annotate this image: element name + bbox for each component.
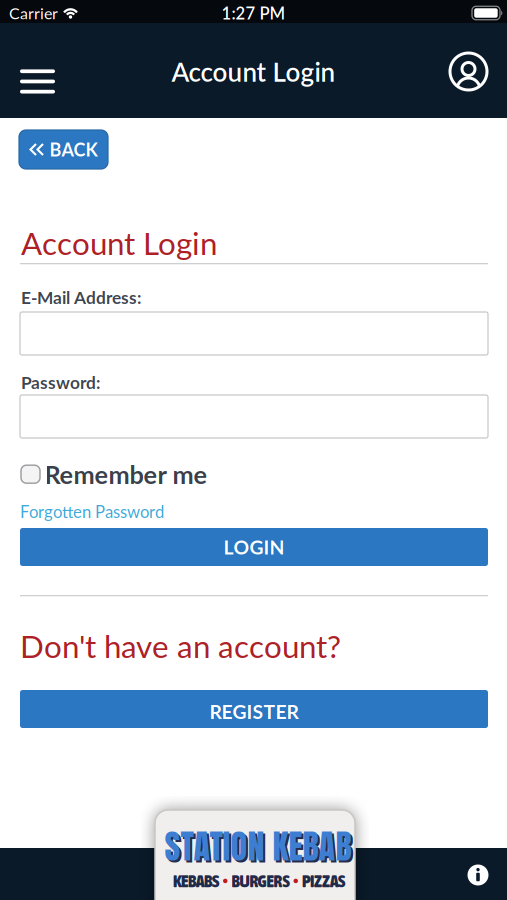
staticText: Password:: [21, 372, 100, 393]
button[interactable]: REGISTER: [20, 690, 488, 728]
staticText: Don't have an account?: [20, 627, 341, 665]
staticText: 1:27 PM: [221, 3, 285, 23]
staticText: KEBABS: [173, 871, 219, 891]
staticText: Account Login: [21, 224, 217, 262]
staticText: LOGIN: [223, 535, 284, 559]
staticText: STATION KEBAB: [166, 822, 353, 874]
staticText: BACK: [49, 139, 97, 160]
button[interactable]: BACK: [19, 130, 108, 169]
staticText: E-Mail Address:: [21, 287, 141, 308]
button[interactable]: LOGIN: [20, 528, 488, 566]
staticText: Account Login: [171, 56, 335, 87]
staticText: Carrier: [9, 3, 58, 23]
button[interactable]: Forgotten Password: [20, 501, 164, 521]
button[interactable]: Account: [444, 47, 493, 96]
button[interactable]: Remember me: [21, 459, 207, 489]
staticText: STATION KEBAB: [164, 820, 351, 872]
staticText: REGISTER: [209, 700, 298, 723]
staticText: Remember me: [44, 459, 207, 489]
staticText: Forgotten Password: [20, 501, 164, 521]
staticText: BURGERS: [231, 871, 289, 891]
staticText: PIZZAS: [302, 871, 345, 891]
button[interactable]: Menu: [12, 51, 63, 91]
button[interactable]: Info: [461, 858, 494, 891]
